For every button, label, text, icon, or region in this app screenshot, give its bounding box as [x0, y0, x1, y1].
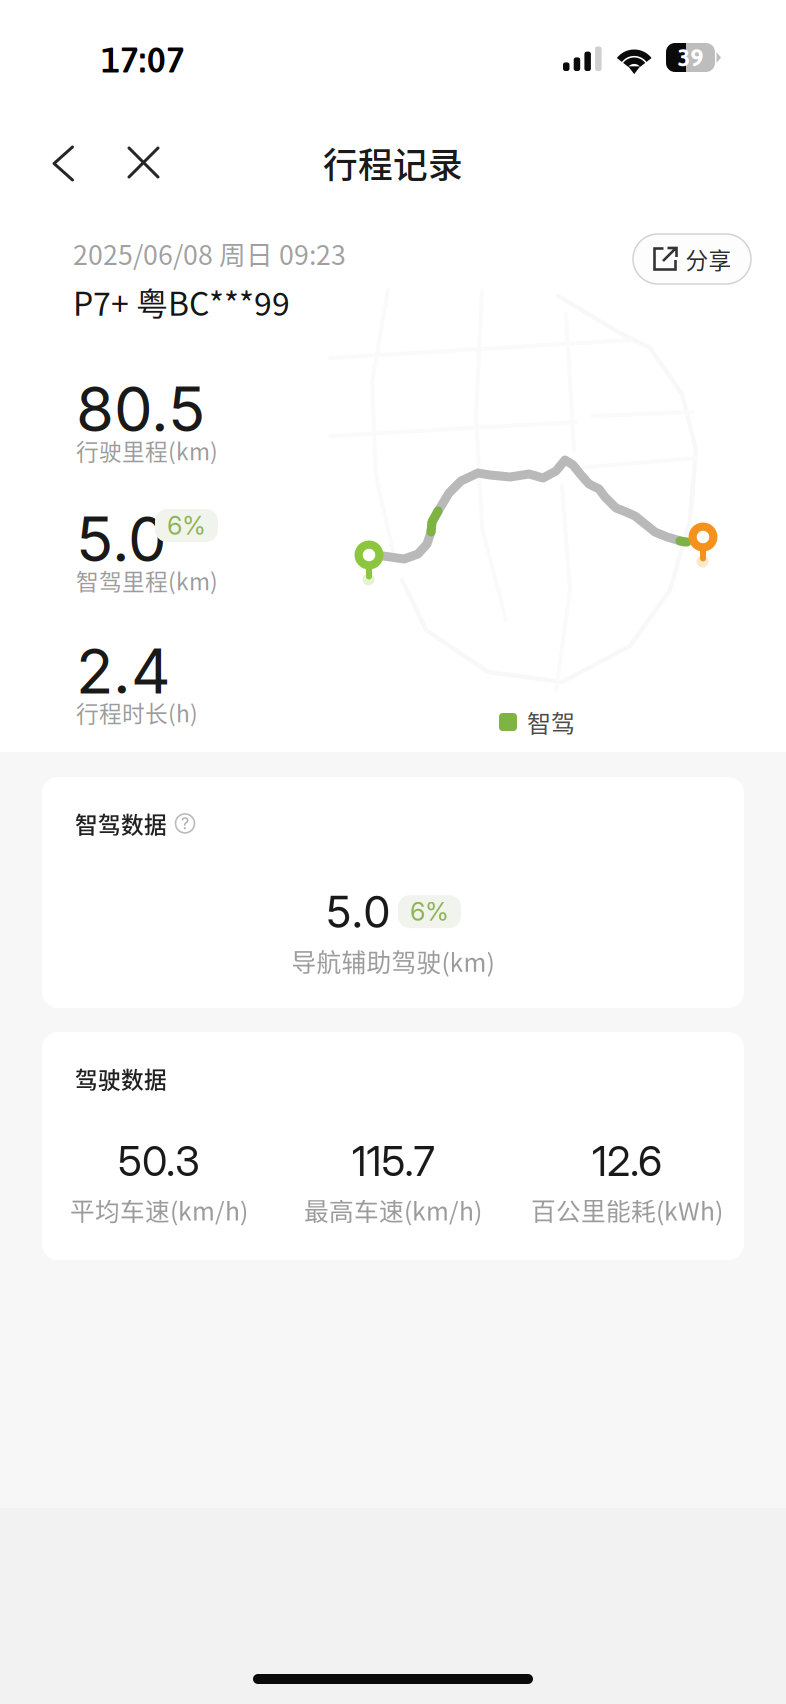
- staticText: 平均车速(km/h): [70, 1192, 248, 1228]
- staticText: 80.5: [76, 372, 205, 446]
- staticText: 115.7: [351, 1136, 434, 1186]
- staticText: 5.0: [325, 885, 391, 938]
- button[interactable]: Close: [107, 127, 180, 198]
- staticText: 最高车速(km/h): [304, 1192, 482, 1228]
- staticText: 智驾: [527, 705, 575, 739]
- staticText: 17:07: [101, 40, 185, 80]
- staticText: 驾驶数据: [75, 1062, 167, 1095]
- staticText: 12.6: [592, 1136, 662, 1186]
- button[interactable]: Back: [31, 128, 97, 199]
- staticText: P7+ 粤BC***99: [73, 279, 290, 325]
- staticText: 智驾里程(km): [76, 564, 218, 597]
- button[interactable]: 分享: [633, 234, 751, 284]
- staticText: 5.0: [76, 502, 167, 576]
- staticText: ?: [181, 814, 189, 833]
- staticText: 6%: [167, 510, 206, 541]
- staticText: 百公里能耗(kWh): [531, 1192, 723, 1228]
- staticText: 行程记录: [323, 138, 463, 188]
- staticText: 导航辅助驾驶(km): [291, 943, 494, 979]
- staticText: 智驾数据: [75, 807, 167, 840]
- staticText: 2025/06/08 周日 09:23: [73, 234, 346, 273]
- staticText: 39: [677, 44, 703, 71]
- staticText: 行程时长(h): [76, 696, 198, 729]
- staticText: 2.4: [76, 634, 171, 708]
- button[interactable]: About autopilot data: [174, 812, 196, 834]
- staticText: 分享: [685, 243, 731, 275]
- staticText: 50.3: [118, 1136, 200, 1186]
- staticText: 行驶里程(km): [76, 434, 218, 467]
- staticText: 6%: [410, 896, 449, 927]
